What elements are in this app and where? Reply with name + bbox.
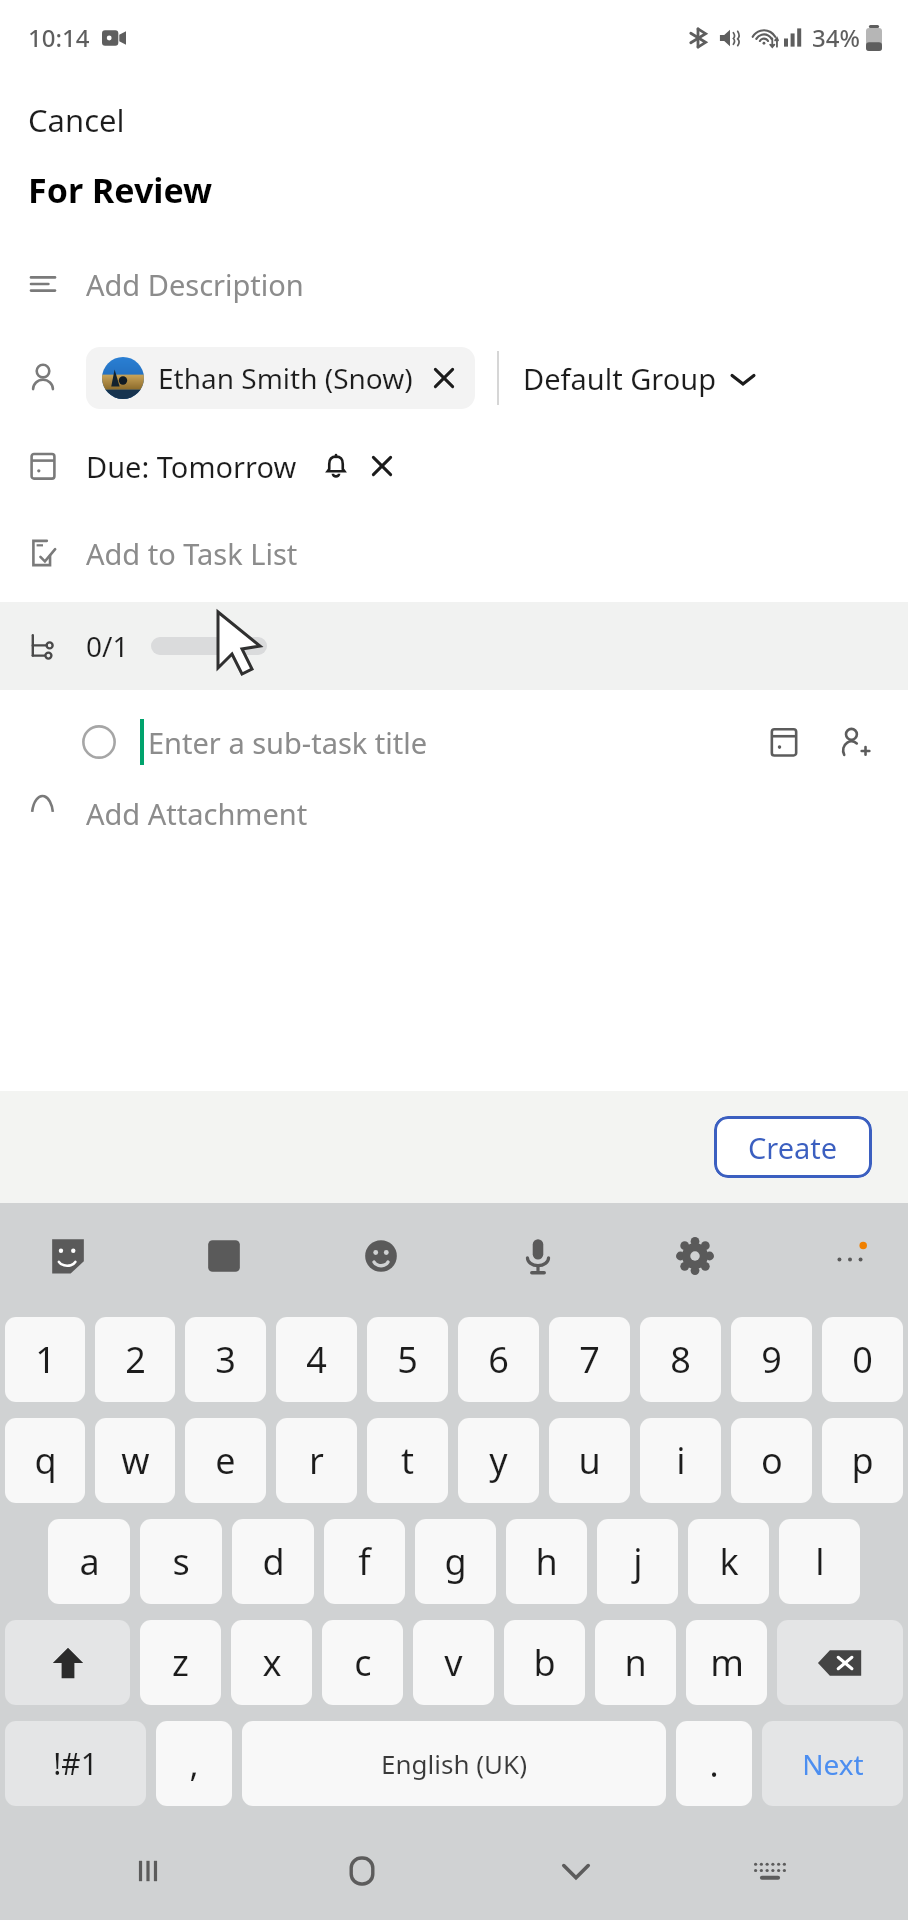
button[interactable]: r	[276, 1418, 357, 1503]
button[interactable]: 6	[458, 1317, 539, 1402]
staticText: Cancel	[28, 99, 125, 141]
button[interactable]: 0	[822, 1317, 903, 1402]
staticText: l	[815, 1537, 825, 1586]
staticText: English (UK)	[381, 1746, 527, 1781]
staticText: Next	[802, 1745, 864, 1783]
button[interactable]: Next	[762, 1721, 903, 1806]
button[interactable]: b	[504, 1620, 585, 1705]
button[interactable]: For Review	[0, 154, 908, 226]
button[interactable]: Backspace	[777, 1620, 903, 1705]
button[interactable]: z	[140, 1620, 221, 1705]
button[interactable]: Shift	[5, 1620, 130, 1705]
button[interactable]: English (UK)	[242, 1721, 666, 1806]
button[interactable]: Recent apps	[113, 1836, 183, 1906]
button[interactable]: g	[415, 1519, 496, 1604]
staticText: j	[633, 1537, 643, 1586]
button[interactable]: 8	[640, 1317, 721, 1402]
staticText: 3	[215, 1335, 236, 1384]
button[interactable]: Reminder	[317, 447, 355, 485]
staticText: y	[489, 1436, 508, 1485]
button[interactable]: y	[458, 1418, 539, 1503]
staticText: f	[358, 1537, 371, 1586]
button[interactable]: Switch keyboard	[735, 1836, 805, 1906]
button[interactable]: e	[185, 1418, 266, 1503]
button[interactable]: n	[595, 1620, 676, 1705]
button[interactable]: Stickers	[40, 1228, 96, 1284]
button[interactable]: Remove due date	[363, 447, 401, 485]
button[interactable]: 4	[276, 1317, 357, 1402]
button[interactable]: t	[367, 1418, 448, 1503]
button[interactable]: d	[232, 1519, 314, 1604]
button[interactable]: s	[140, 1519, 222, 1604]
button[interactable]: Remove assignee	[429, 363, 459, 393]
button[interactable]: Voice input	[510, 1228, 566, 1284]
staticText: 9	[761, 1335, 782, 1384]
button[interactable]: Add Description	[0, 254, 908, 314]
staticText: 1	[35, 1335, 56, 1384]
button[interactable]: 9	[731, 1317, 812, 1402]
button[interactable]: a	[48, 1519, 130, 1604]
button[interactable]: Emoji	[353, 1228, 409, 1284]
button[interactable]: c	[322, 1620, 403, 1705]
staticText: g	[444, 1537, 467, 1586]
staticText: v	[444, 1638, 463, 1687]
button[interactable]: Create	[714, 1116, 872, 1178]
button[interactable]: Hide keyboard	[541, 1836, 611, 1906]
button[interactable]: p	[822, 1418, 903, 1503]
staticText: Ethan Smith (Snow)	[158, 359, 413, 397]
staticText: e	[215, 1436, 236, 1485]
staticText: 6	[488, 1335, 509, 1384]
button[interactable]: ,	[156, 1721, 232, 1806]
button[interactable]: Home	[327, 1836, 397, 1906]
button[interactable]: m	[686, 1620, 767, 1705]
button[interactable]: h	[506, 1519, 587, 1604]
button[interactable]: f	[324, 1519, 405, 1604]
button[interactable]: Keyboard settings	[667, 1228, 723, 1284]
button[interactable]: l	[779, 1519, 860, 1604]
button[interactable]: 2	[95, 1317, 175, 1402]
staticText: Add Attachment	[86, 794, 308, 833]
button[interactable]: Set sub-task date	[756, 714, 812, 770]
button[interactable]: Due: Tomorrow	[86, 447, 297, 486]
button[interactable]: Assign sub-task	[826, 714, 882, 770]
staticText: b	[533, 1638, 556, 1687]
button[interactable]: More options	[824, 1230, 876, 1282]
staticText: Add Description	[86, 265, 304, 304]
staticText: p	[851, 1436, 874, 1485]
staticText: d	[262, 1537, 285, 1586]
button[interactable]: Add Attachment	[0, 794, 908, 834]
button[interactable]: 3	[185, 1317, 266, 1402]
button[interactable]: 5	[367, 1317, 448, 1402]
button[interactable]: 7	[549, 1317, 630, 1402]
staticText: c	[354, 1638, 372, 1687]
button[interactable]: Default Group	[523, 351, 756, 406]
staticText: z	[172, 1638, 189, 1687]
staticText: Enter a sub-task title	[148, 723, 428, 762]
button[interactable]: Ethan Smith (Snow)	[86, 347, 475, 409]
button[interactable]: q	[5, 1418, 85, 1503]
staticText: w	[121, 1436, 150, 1485]
staticText: Create	[748, 1128, 838, 1167]
staticText: 8	[670, 1335, 691, 1384]
staticText: Add to Task List	[86, 534, 298, 573]
button[interactable]: .	[676, 1721, 752, 1806]
button[interactable]: 0/1	[0, 602, 908, 690]
staticText: 7	[579, 1335, 600, 1384]
button[interactable]: GIF	[196, 1228, 252, 1284]
button[interactable]: i	[640, 1418, 721, 1503]
staticText: Default Group	[523, 359, 716, 398]
button[interactable]: v	[413, 1620, 494, 1705]
staticText: .	[709, 1741, 719, 1787]
button[interactable]: o	[731, 1418, 812, 1503]
staticText: u	[578, 1436, 601, 1485]
button[interactable]: !#1	[5, 1721, 146, 1806]
button[interactable]: j	[597, 1519, 678, 1604]
button[interactable]: Cancel	[0, 86, 908, 154]
button[interactable]: k	[688, 1519, 769, 1604]
staticText: s	[172, 1537, 190, 1586]
button[interactable]: 1	[5, 1317, 85, 1402]
button[interactable]: Add to Task List	[0, 520, 908, 586]
button[interactable]: w	[95, 1418, 175, 1503]
button[interactable]: x	[231, 1620, 312, 1705]
button[interactable]: u	[549, 1418, 630, 1503]
